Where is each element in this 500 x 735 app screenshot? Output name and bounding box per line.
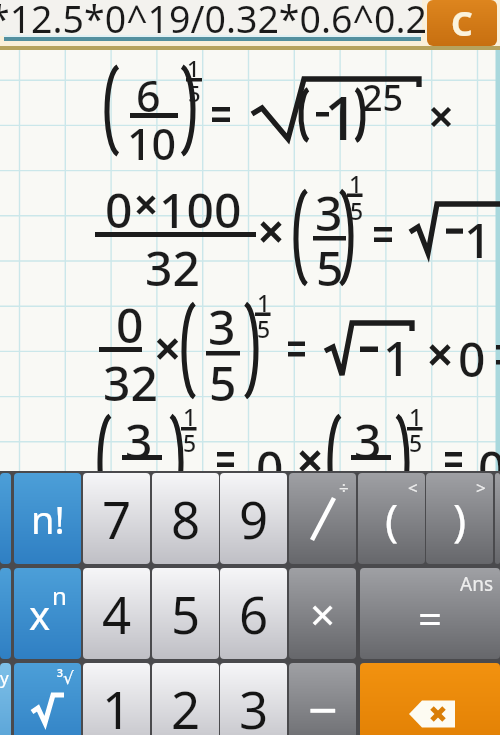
button[interactable]: 7 (83, 473, 150, 564)
button[interactable]: C (427, 0, 497, 46)
staticText: ÷ (339, 476, 349, 499)
staticText: 0 (116, 292, 144, 357)
staticText: 100 (159, 177, 242, 242)
button[interactable] (495, 473, 500, 564)
staticText: 32 (103, 350, 158, 415)
staticText: 4 (102, 579, 132, 648)
button[interactable]: 6 (220, 568, 287, 659)
staticText: 9 (239, 484, 269, 553)
button[interactable]: 9 (220, 473, 287, 564)
staticText: 1 (409, 401, 423, 432)
staticText: × (310, 584, 336, 644)
staticText: 0 (105, 177, 133, 242)
button[interactable]: = (360, 568, 500, 659)
button[interactable]: 2 (152, 663, 219, 735)
staticText: 3 (208, 294, 236, 359)
staticText: n! (31, 493, 65, 545)
staticText: 10 (127, 114, 177, 173)
button[interactable]: 3 (220, 663, 287, 735)
staticText: 1 (257, 287, 271, 318)
staticText: − (308, 673, 338, 735)
staticText: 5 (350, 195, 364, 226)
staticText: 1 (464, 207, 492, 272)
button[interactable] (0, 568, 11, 659)
button[interactable]: 4 (83, 568, 150, 659)
staticText: C (451, 0, 473, 46)
staticText: 6 (136, 66, 161, 125)
button[interactable]: ÷ (289, 473, 356, 564)
staticText: 5 (209, 350, 237, 415)
button[interactable]: x (14, 568, 81, 659)
button[interactable]: 1 (83, 663, 150, 735)
staticText: ) (453, 489, 467, 549)
staticText: 0 (458, 326, 486, 391)
staticText: 3 (239, 674, 269, 735)
staticText: 1 (324, 76, 359, 158)
staticText: ( (385, 489, 399, 549)
staticText: = (418, 589, 443, 646)
button[interactable]: ( (358, 473, 425, 564)
staticText: 0 (478, 435, 500, 472)
button[interactable]: y (0, 663, 11, 735)
staticText: 32 (145, 235, 200, 300)
staticText: 8 (171, 484, 201, 553)
staticText: 5 (171, 579, 201, 648)
staticText: 5 (188, 78, 201, 108)
staticText: 0 (256, 435, 284, 472)
staticText: < (408, 476, 418, 499)
staticText: > (476, 476, 486, 499)
staticText: 2 (171, 674, 201, 735)
staticText: 5 (183, 427, 197, 458)
staticText: *12.5*0^19/0.32*0.6^0.2 (0, 0, 427, 42)
staticText: 1 (183, 401, 197, 432)
staticText: 5 (409, 427, 423, 458)
staticText: 25 (362, 73, 404, 122)
staticText: 1 (102, 674, 132, 735)
staticText: 7 (102, 484, 132, 553)
button[interactable]: × (289, 568, 356, 659)
staticText: ³√ (57, 666, 74, 689)
button[interactable] (0, 473, 11, 564)
staticText: Ans (460, 571, 493, 597)
staticText: 3 (354, 408, 382, 472)
button[interactable]: ) (426, 473, 493, 564)
staticText: 5 (257, 313, 271, 344)
button[interactable]: ³√ (14, 663, 81, 735)
staticText: 1 (187, 53, 200, 83)
button[interactable]: n! (14, 473, 81, 564)
staticText: y (0, 666, 9, 689)
button[interactable]: − (289, 663, 356, 735)
staticText: x (29, 587, 51, 641)
staticText: 6 (239, 579, 269, 648)
button[interactable]: 8 (152, 473, 219, 564)
staticText: 5 (316, 235, 344, 300)
staticText: n (52, 579, 67, 612)
button[interactable] (360, 663, 500, 735)
staticText: 3 (125, 408, 153, 472)
button[interactable] (0, 0, 422, 36)
staticText: 1 (383, 325, 411, 390)
staticText: 3 (315, 180, 343, 245)
staticText: 1 (349, 168, 363, 199)
button[interactable]: 5 (152, 568, 219, 659)
